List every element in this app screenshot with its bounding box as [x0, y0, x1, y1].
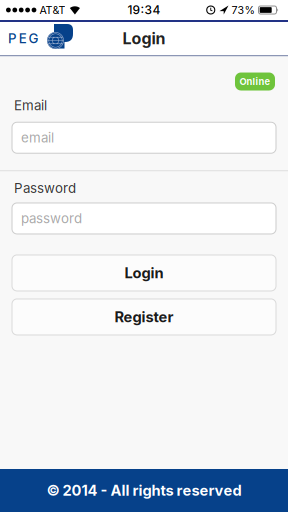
staticText: PEG [8, 31, 39, 46]
button[interactable]: Register [12, 299, 276, 335]
staticText: Email [14, 97, 47, 113]
staticText: Login [124, 264, 163, 282]
button[interactable]: password [12, 203, 276, 234]
staticText: Password [14, 180, 76, 196]
staticText: Online [239, 76, 270, 87]
button[interactable]: email [12, 122, 276, 153]
button[interactable]: Login [12, 255, 276, 291]
staticText: email [21, 130, 54, 146]
staticText: © 2014 - All rights reserved [46, 482, 241, 499]
staticText: AT&T [39, 4, 65, 16]
staticText: Register [114, 308, 173, 326]
staticText: Login [122, 29, 165, 48]
staticText: password [21, 211, 82, 226]
staticText: 19:34 [127, 3, 160, 17]
staticText: 73% [231, 4, 254, 16]
